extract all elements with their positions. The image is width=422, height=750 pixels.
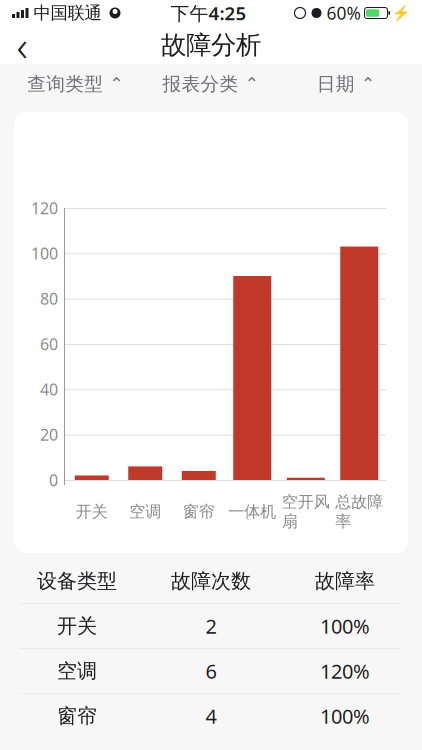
staticText: 60 — [40, 333, 58, 355]
staticText: 故障次数 — [171, 569, 251, 593]
staticText: 80 — [40, 288, 58, 309]
staticText: 100% — [320, 703, 370, 729]
staticText: 6 — [205, 658, 216, 684]
staticText: 100 — [31, 243, 58, 264]
staticText: 窗帘 — [57, 704, 97, 728]
staticText: ⌃ — [361, 74, 376, 94]
button[interactable]: 查询类型 — [8, 63, 143, 104]
staticText: 0 — [49, 469, 58, 491]
staticText: 100% — [320, 613, 370, 639]
staticText: 一体机 — [228, 502, 276, 521]
staticText: ⌃ — [109, 74, 124, 94]
staticText: 2 — [205, 613, 216, 639]
staticText: 开关 — [76, 502, 108, 521]
staticText: 20 — [40, 424, 58, 445]
staticText: 下午4:25 — [170, 1, 246, 25]
staticText: 报表分类 — [162, 72, 238, 95]
staticText: 开关 — [57, 614, 97, 638]
staticText: 窗帘 — [183, 502, 215, 521]
staticText: 空开风扇 — [282, 492, 330, 531]
staticText: 40 — [40, 379, 58, 400]
staticText: ‹ — [16, 17, 27, 73]
staticText: ⌃ — [244, 74, 259, 94]
button[interactable]: 报表分类 — [143, 63, 279, 104]
staticText: 120 — [31, 197, 58, 219]
staticText: 日期 — [317, 72, 355, 95]
staticText: 空调 — [129, 502, 161, 521]
staticText: 60% — [326, 1, 360, 24]
staticText: 120% — [320, 658, 370, 684]
staticText: 4 — [205, 703, 216, 729]
button[interactable]: 返回 — [0, 25, 44, 65]
staticText: ⚡ — [392, 5, 410, 21]
staticText: 空调 — [57, 659, 97, 683]
staticText: 故障率 — [315, 569, 375, 593]
staticText: 中国联通 — [33, 2, 101, 24]
staticText: 查询类型 — [27, 72, 103, 95]
button[interactable]: 日期 — [279, 63, 414, 104]
staticText: 总故障率 — [335, 492, 383, 531]
staticText: 故障分析 — [161, 29, 261, 60]
staticText: 设备类型 — [37, 569, 117, 593]
